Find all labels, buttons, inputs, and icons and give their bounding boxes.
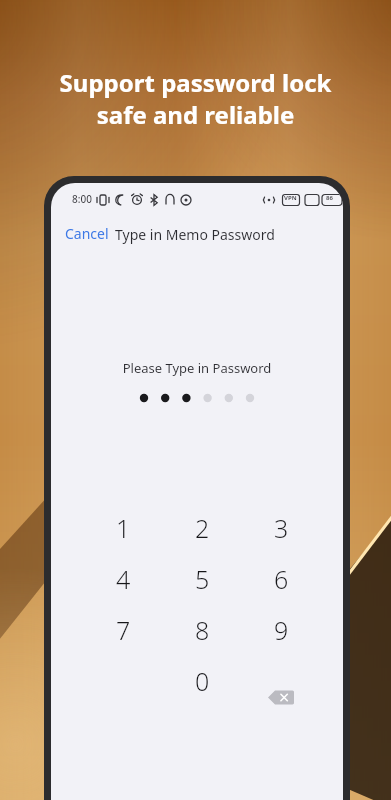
staticText: 5 <box>195 562 210 596</box>
staticText: 1 <box>116 511 131 545</box>
staticText: Support password lock safe and reliable <box>0 66 391 800</box>
button[interactable]: 0 <box>176 662 228 700</box>
button[interactable]: 2 <box>176 509 228 547</box>
button[interactable]: 3 <box>255 509 307 547</box>
staticText: 0 <box>195 664 210 698</box>
staticText: 6 <box>274 562 289 596</box>
staticText: 2 <box>195 511 210 545</box>
button[interactable]: 8 <box>176 611 228 649</box>
button[interactable]: 4 <box>97 560 149 598</box>
button[interactable]: 6 <box>255 560 307 598</box>
staticText: 8 <box>195 613 210 647</box>
button[interactable]: 1 <box>97 509 149 547</box>
button[interactable]: 9 <box>255 611 307 649</box>
staticText: 7 <box>116 613 131 647</box>
staticText: 8:00 <box>72 192 92 206</box>
staticText: 4 <box>116 562 131 596</box>
staticText: Type in Memo Password <box>115 225 275 244</box>
staticText: 9 <box>274 613 289 647</box>
staticText: 86 <box>326 194 333 202</box>
button[interactable]: 5 <box>176 560 228 598</box>
button[interactable]: 7 <box>97 611 149 649</box>
staticText: Please Type in Password <box>51 359 343 381</box>
staticText: Cancel <box>65 224 109 243</box>
staticText: 3 <box>274 511 289 545</box>
staticText: VPN <box>284 194 297 202</box>
button[interactable]: Backspace <box>259 679 303 715</box>
button[interactable]: Cancel <box>65 221 117 245</box>
